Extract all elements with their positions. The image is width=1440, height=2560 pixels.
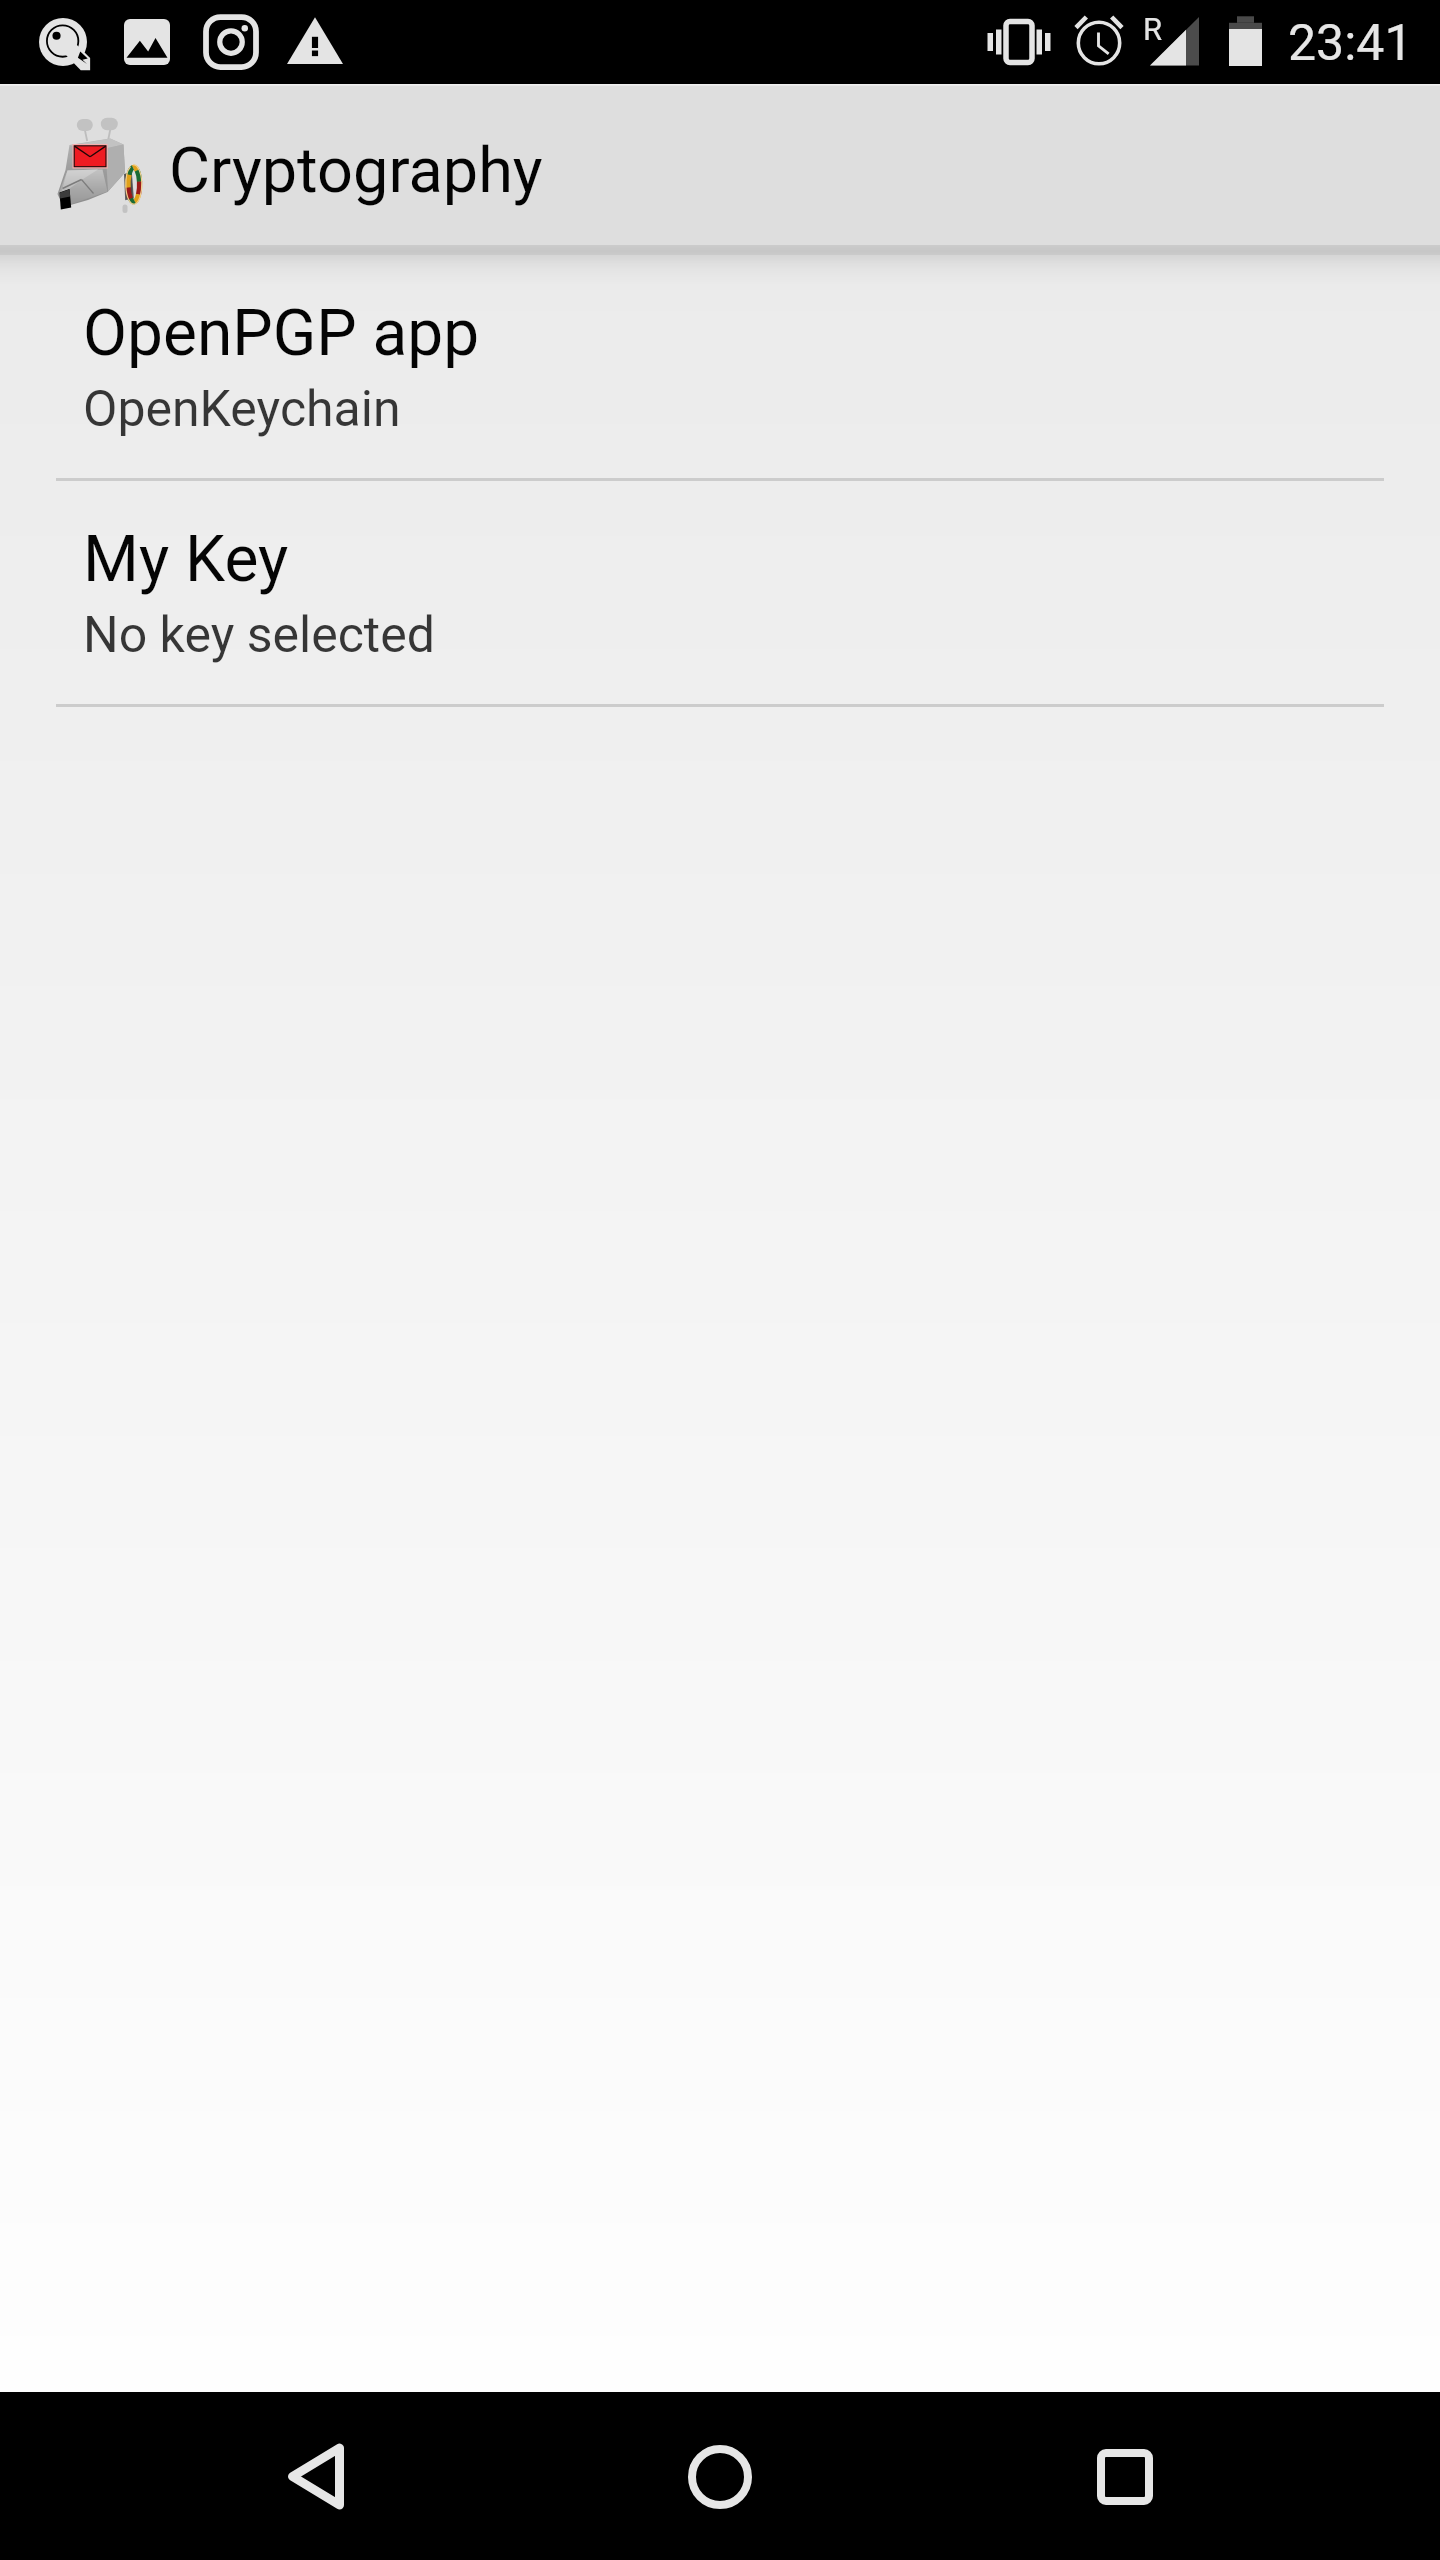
staticText: 23:41 (1288, 14, 1413, 73)
button[interactable]: Home (630, 2392, 810, 2560)
staticText: OpenKeychain (83, 380, 401, 439)
staticText: My Key (83, 522, 289, 597)
staticText: No key selected (83, 606, 435, 665)
button[interactable]: OpenPGP app (0, 255, 1440, 478)
button[interactable]: Recent apps (1035, 2392, 1215, 2560)
staticText: OpenPGP app (83, 296, 480, 371)
staticText: Cryptography (169, 134, 543, 208)
button[interactable]: My Key (0, 481, 1440, 704)
staticText: R (1143, 11, 1163, 47)
button[interactable]: Back (226, 2392, 406, 2560)
